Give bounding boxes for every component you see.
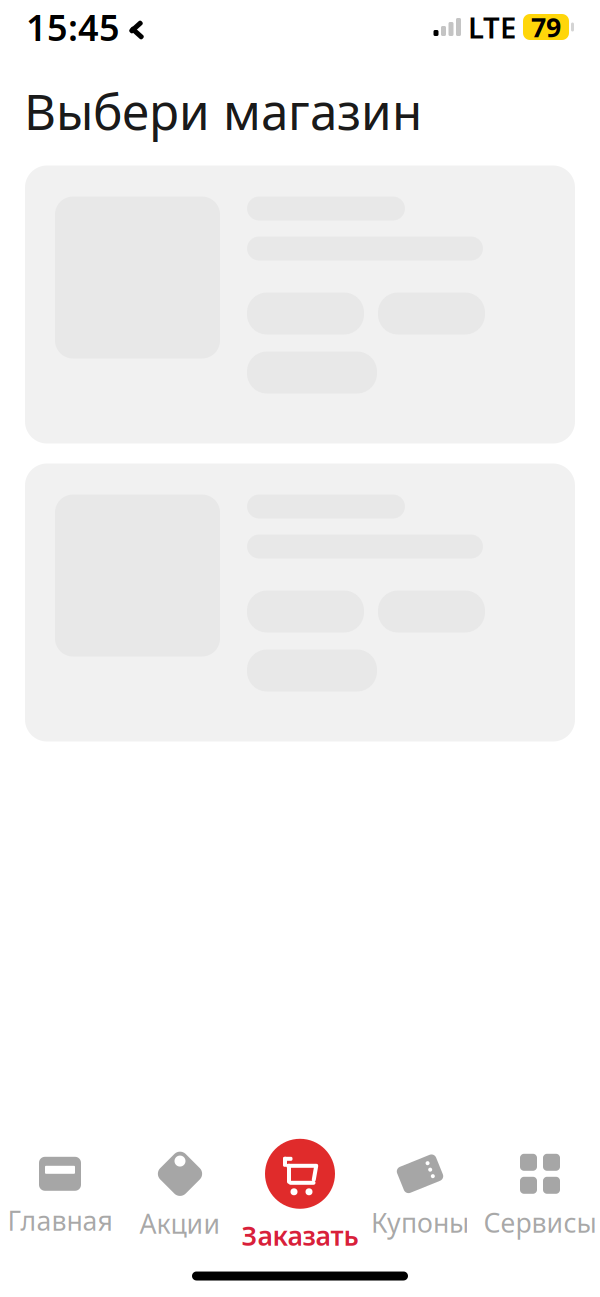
staticText: Выбери магазин (24, 78, 422, 143)
staticText: 79 (531, 9, 561, 45)
staticText: Купоны (371, 1205, 469, 1240)
staticText: 15:45 (26, 3, 120, 51)
staticText: Главная (7, 1203, 112, 1238)
button[interactable]: Заказать (240, 1141, 360, 1251)
button[interactable]: Главная (0, 1141, 120, 1251)
staticText: Сервисы (483, 1205, 596, 1240)
button[interactable]: Акции (120, 1141, 240, 1251)
button[interactable]: Купоны (360, 1141, 480, 1251)
staticText: Акции (139, 1206, 220, 1241)
button[interactable]: Сервисы (480, 1141, 600, 1251)
staticText: LTE (468, 7, 516, 46)
staticText: Заказать (241, 1218, 358, 1253)
